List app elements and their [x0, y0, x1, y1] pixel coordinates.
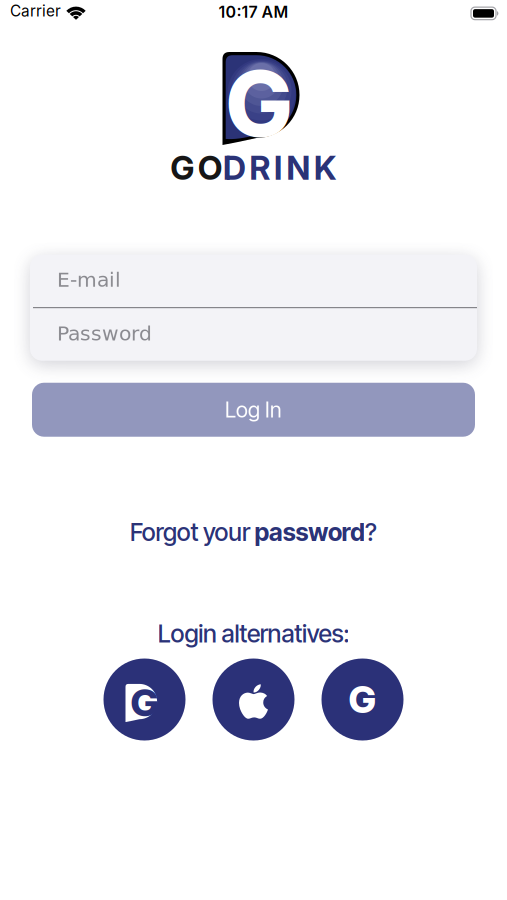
staticText: Password	[57, 322, 152, 345]
staticText: Forgot your password?	[130, 518, 377, 547]
staticText: GO	[170, 148, 223, 187]
button[interactable]: Log in with Apple	[212, 658, 294, 740]
staticText: DRINK	[223, 148, 337, 187]
button[interactable]: Log In	[32, 383, 475, 437]
button[interactable]: Password	[30, 308, 477, 361]
button[interactable]: Log in with GoDrink	[103, 658, 185, 740]
button[interactable]: Log in with Google	[321, 658, 403, 740]
staticText: Log In	[225, 397, 282, 423]
staticText: G	[348, 677, 376, 722]
staticText: G	[130, 679, 158, 725]
staticText: E-mail	[57, 268, 121, 292]
staticText: 10:17 AM	[218, 2, 288, 22]
button[interactable]: E-mail	[30, 254, 477, 307]
staticText: G	[225, 49, 293, 158]
staticText: Carrier	[10, 2, 61, 20]
button[interactable]: Forgot your password?	[130, 518, 377, 547]
staticText: Login alternatives:	[158, 619, 349, 648]
